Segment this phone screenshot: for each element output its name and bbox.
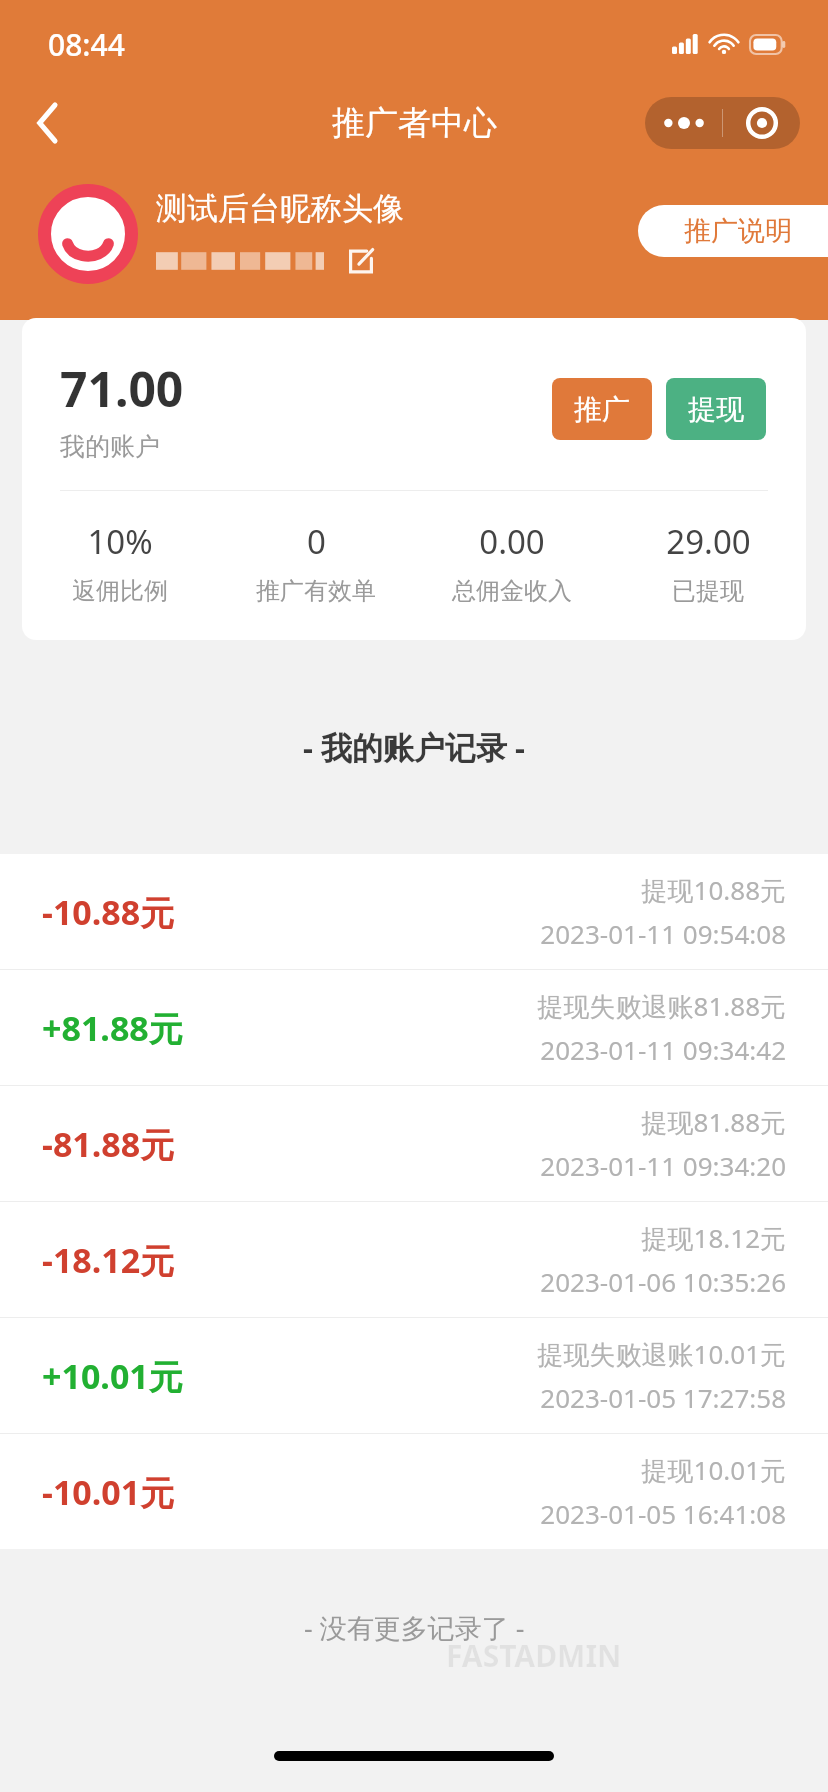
staticText: 10% [87, 519, 153, 564]
button[interactable]: 0 [218, 519, 414, 606]
staticText: 提现81.88元 [641, 1104, 786, 1140]
staticText: 推广说明 [684, 214, 792, 248]
staticText: 2023-01-05 17:27:58 [540, 1380, 786, 1415]
staticText: 推广者中心 [332, 102, 497, 144]
button[interactable]: -10.01元 [0, 1434, 828, 1549]
button[interactable]: -10.88元 [0, 854, 828, 969]
button[interactable]: 10% [22, 519, 218, 606]
button[interactable]: -18.12元 [0, 1202, 828, 1317]
staticText: -81.88元 [42, 1121, 175, 1167]
staticText: -18.12元 [42, 1237, 175, 1283]
staticText: 2023-01-11 09:54:08 [540, 916, 786, 951]
staticText: 推广有效单 [256, 576, 376, 606]
staticText: 2023-01-05 16:41:08 [540, 1496, 786, 1531]
staticText: 提现18.12元 [641, 1220, 786, 1256]
staticText: +10.01元 [42, 1353, 183, 1399]
staticText: 29.00 [666, 519, 751, 564]
button[interactable]: 29.00 [610, 519, 806, 606]
button[interactable]: 0.00 [414, 519, 610, 606]
button[interactable]: More options [645, 97, 800, 149]
staticText: 08:44 [48, 24, 125, 65]
staticText: 测试后台昵称头像 [156, 189, 404, 228]
button[interactable]: Edit nickname [342, 242, 380, 280]
staticText: 2023-01-11 09:34:42 [540, 1032, 786, 1067]
staticText: - 没有更多记录了 - [304, 1609, 525, 1646]
button[interactable]: 推广说明 [638, 205, 828, 257]
button[interactable]: Back [18, 93, 78, 153]
staticText: 2023-01-06 10:35:26 [540, 1264, 786, 1299]
staticText: - 我的账户记录 - [303, 726, 525, 768]
staticText: -10.88元 [42, 889, 175, 935]
button[interactable]: 推广 [552, 378, 652, 440]
staticText: 我的账户 [60, 431, 160, 462]
staticText: 2023-01-11 09:34:20 [540, 1148, 786, 1183]
staticText: 总佣金收入 [452, 576, 572, 606]
staticText: +81.88元 [42, 1005, 183, 1051]
button[interactable]: +81.88元 [0, 970, 828, 1085]
staticText: 提现10.01元 [641, 1452, 786, 1488]
button[interactable]: +10.01元 [0, 1318, 828, 1433]
staticText: 0 [307, 519, 326, 564]
staticText: 0.00 [479, 519, 545, 564]
staticText: 已提现 [672, 576, 744, 606]
staticText: FASTADMIN [446, 1635, 622, 1676]
button[interactable]: -81.88元 [0, 1086, 828, 1201]
staticText: 71.00 [60, 356, 184, 421]
staticText: 提现失败退账81.88元 [537, 988, 786, 1024]
staticText: 提现失败退账10.01元 [537, 1336, 786, 1372]
staticText: -10.01元 [42, 1469, 175, 1515]
staticText: 提现 [688, 392, 744, 427]
button[interactable]: Avatar [42, 188, 134, 280]
staticText: 提现10.88元 [641, 872, 786, 908]
button[interactable]: 提现 [666, 378, 766, 440]
staticText: 返佣比例 [72, 576, 168, 606]
staticText: 推广 [574, 392, 630, 427]
